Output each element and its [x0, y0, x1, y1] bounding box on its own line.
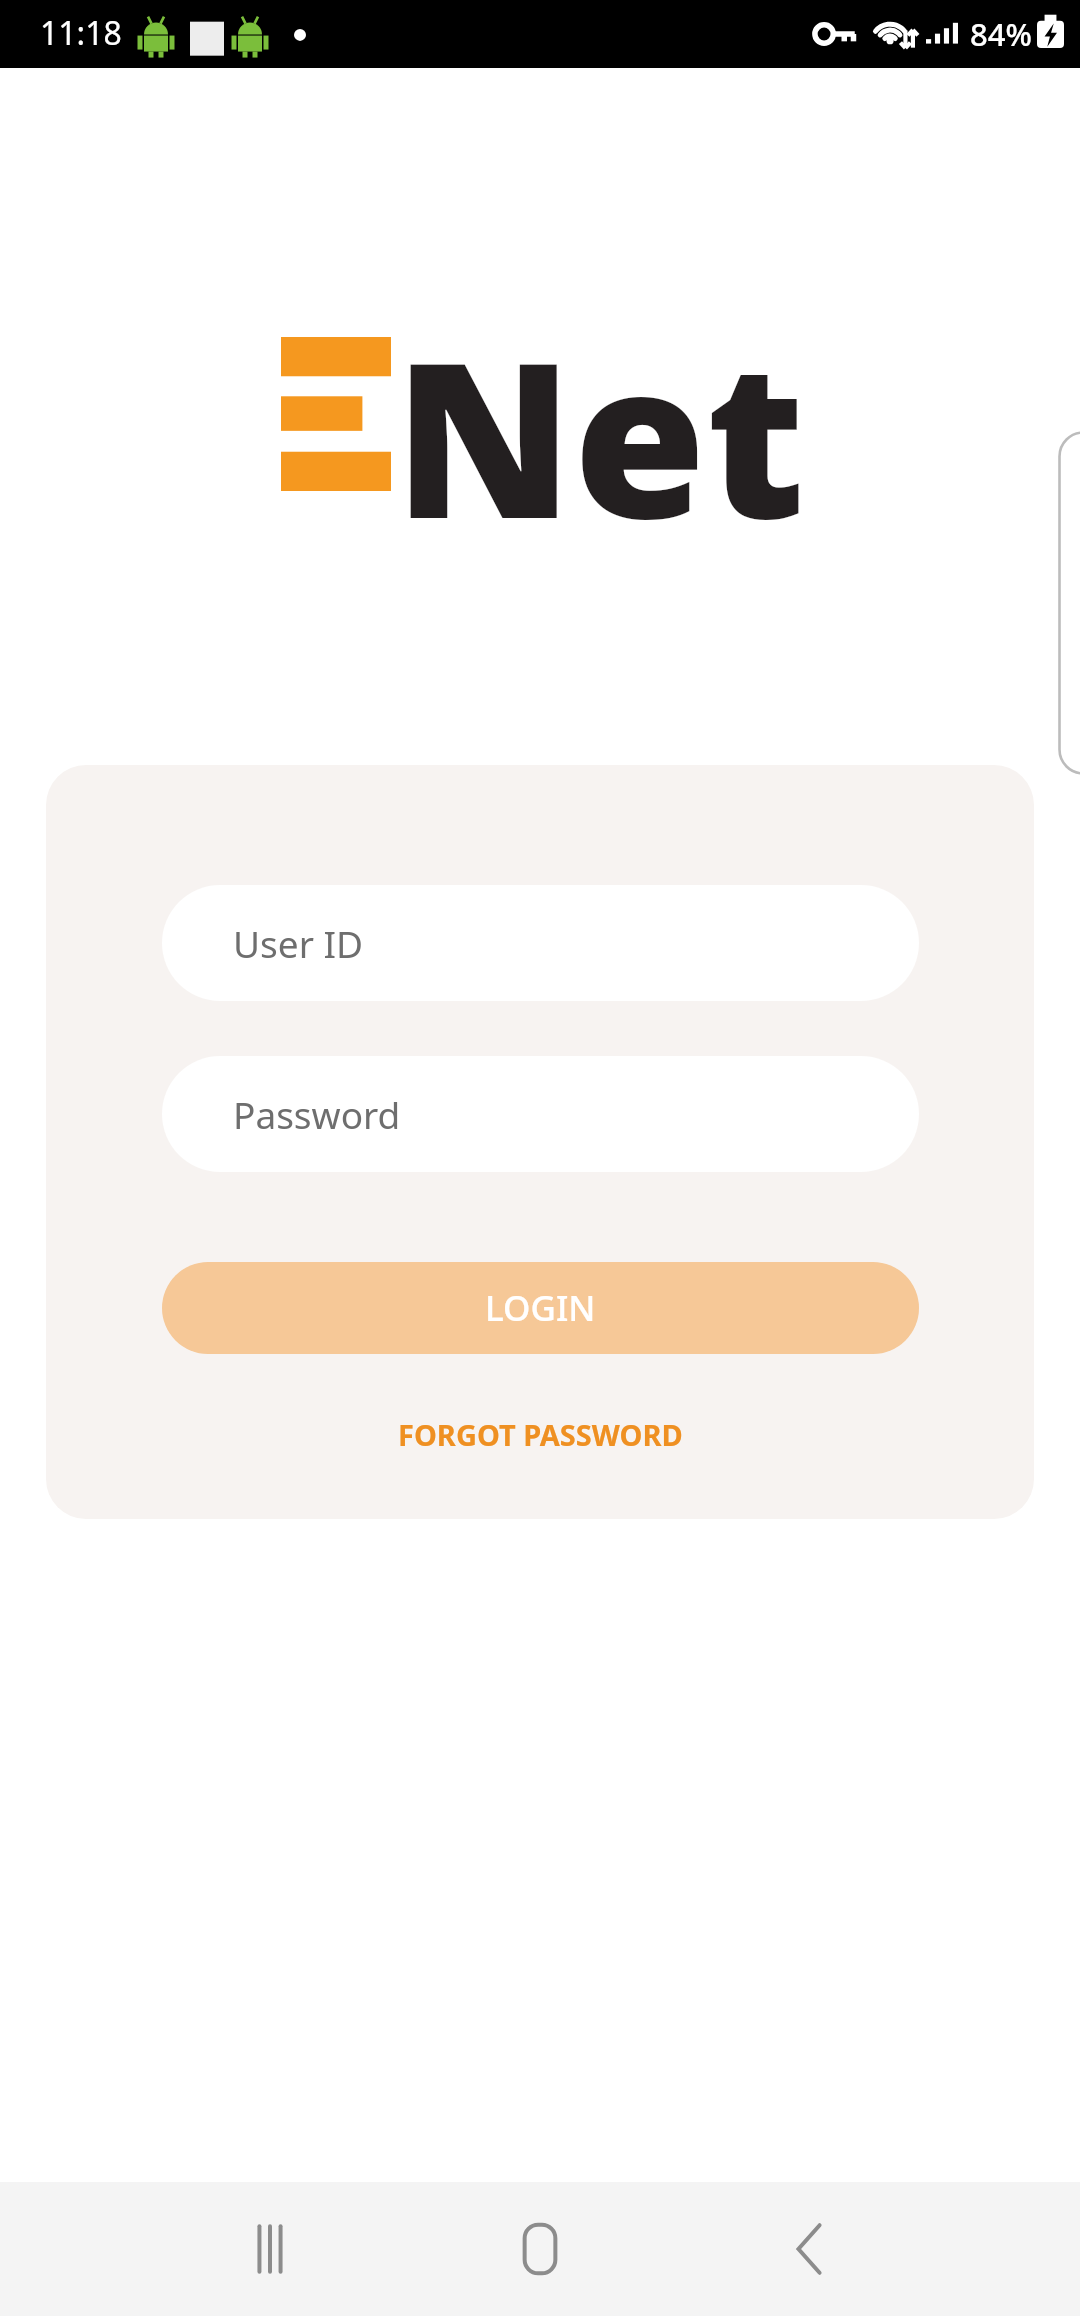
button[interactable]: Recent apps: [180, 2182, 360, 2316]
button[interactable]: Password: [162, 1056, 919, 1172]
button[interactable]: Home: [450, 2182, 630, 2316]
button[interactable]: LOGIN: [162, 1262, 919, 1354]
staticText: LOGIN: [485, 1284, 596, 1332]
staticText: 84%: [970, 13, 1032, 55]
staticText: Net: [394, 288, 806, 581]
button[interactable]: User ID: [162, 885, 919, 1001]
button[interactable]: Back: [720, 2182, 900, 2316]
staticText: Password: [233, 1089, 401, 1139]
staticText: 11:18: [40, 11, 122, 55]
staticText: FORGOT PASSWORD: [398, 1415, 683, 1454]
staticText: User ID: [233, 918, 364, 968]
button[interactable]: FORGOT PASSWORD: [46, 1401, 1034, 1467]
